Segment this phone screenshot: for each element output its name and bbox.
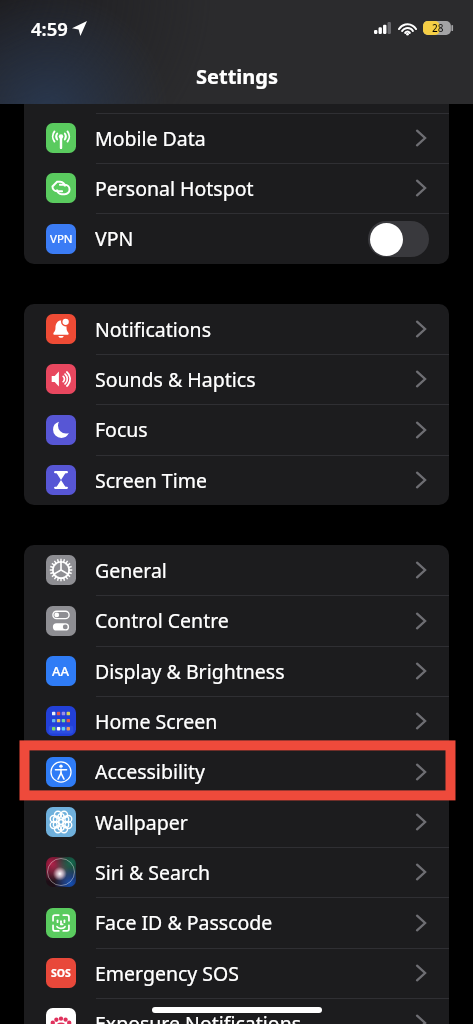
button[interactable]: General (24, 545, 449, 595)
button[interactable]: VPN toggle (368, 221, 429, 257)
staticText: Sounds & Haptics (95, 366, 256, 393)
staticText: Siri & Search (95, 859, 210, 886)
staticText: Wi-Fi (95, 75, 140, 102)
button[interactable]: AA (24, 646, 449, 696)
button[interactable]: Wi-Fi (24, 63, 449, 113)
staticText: Accessibility (95, 758, 205, 785)
button[interactable]: Focus (24, 404, 449, 455)
button[interactable]: Notifications (24, 304, 449, 354)
button[interactable]: VPN (24, 213, 449, 264)
staticText: Face ID & Passcode (95, 909, 273, 936)
staticText: Notifications (95, 316, 211, 343)
staticText: VPN (50, 231, 73, 247)
staticText: Focus (95, 416, 148, 443)
button[interactable]: Control Centre (24, 595, 449, 646)
button[interactable]: Sounds & Haptics (24, 354, 449, 404)
button[interactable]: Wallpaper (24, 797, 449, 847)
button[interactable]: Home Screen (24, 696, 449, 746)
staticText: Display & Brightness (95, 658, 285, 685)
staticText: Settings (196, 63, 278, 90)
staticText: Control Centre (95, 607, 229, 634)
button[interactable]: Exposure Notifications (24, 998, 449, 1024)
staticText: Mobile Data (95, 125, 206, 152)
button[interactable]: Personal Hotspot (24, 163, 449, 213)
button[interactable]: Mobile Data (24, 113, 449, 163)
staticText: VPN (95, 225, 134, 252)
staticText: 4:59 (31, 16, 68, 41)
staticText: Screen Time (95, 467, 207, 494)
staticText: Home Screen (95, 708, 218, 735)
button[interactable]: SOS (24, 948, 449, 998)
staticText: General (95, 557, 167, 584)
button[interactable]: Accessibility (24, 746, 449, 797)
staticText: AA (52, 662, 70, 680)
button[interactable]: Face ID & Passcode (24, 897, 449, 948)
staticText: Emergency SOS (95, 960, 239, 987)
button[interactable]: Siri & Search (24, 847, 449, 897)
staticText: Personal Hotspot (95, 175, 254, 202)
staticText: Wallpaper (95, 809, 188, 836)
staticText: Exposure Notifications (95, 1010, 302, 1024)
staticText: SOS (51, 966, 71, 980)
button[interactable]: Screen Time (24, 455, 449, 505)
staticText: 28 (432, 21, 444, 35)
